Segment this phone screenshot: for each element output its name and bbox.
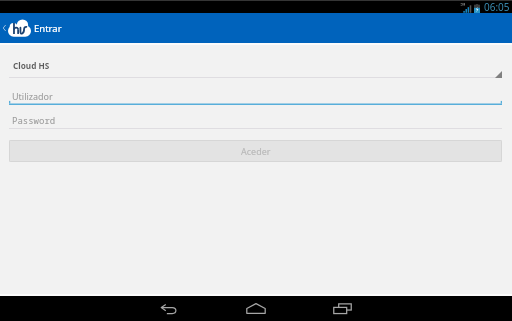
button[interactable]: Utilizador [9, 87, 502, 105]
button[interactable]: Back [145, 296, 193, 321]
staticText: Cloud HS [13, 60, 50, 71]
staticText: Aceder [241, 145, 271, 157]
button[interactable]: Navigate up [0, 13, 62, 43]
staticText: Password [12, 114, 56, 126]
other: Navigate up [0, 20, 8, 36]
staticText: Utilizador [12, 90, 53, 102]
button[interactable]: Cloud HS [9, 56, 502, 78]
button[interactable]: Aceder [9, 140, 502, 162]
button[interactable]: Recent apps [318, 296, 366, 321]
button[interactable]: Home [232, 296, 280, 321]
button[interactable]: Password [9, 111, 502, 129]
staticText: Entrar [34, 22, 62, 35]
staticText: 06:05 [484, 0, 510, 13]
